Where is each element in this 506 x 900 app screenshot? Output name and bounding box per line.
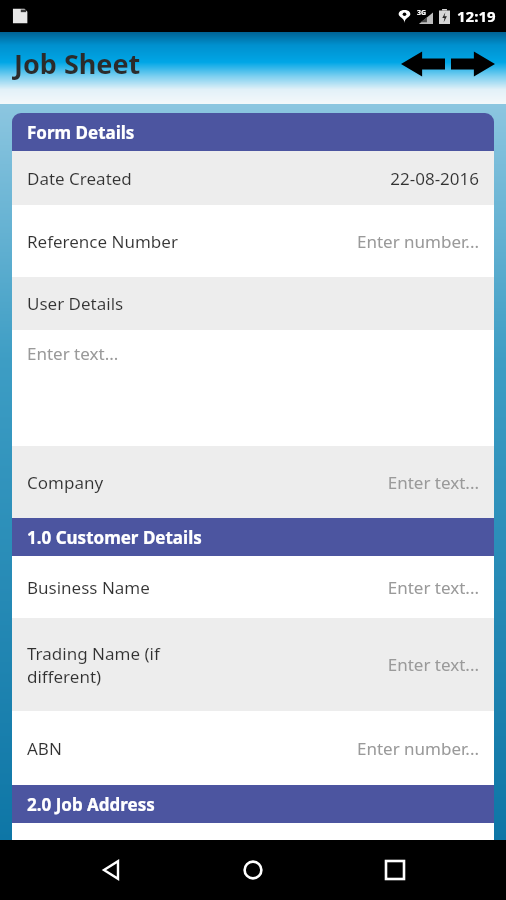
staticText: Date Created xyxy=(27,167,390,190)
button[interactable]: Next xyxy=(448,47,498,81)
staticText: Form Details xyxy=(27,121,135,144)
button[interactable]: Home xyxy=(223,840,283,900)
staticText: User Details xyxy=(27,292,124,315)
button[interactable]: Recent apps xyxy=(365,840,425,900)
staticText: Enter text... xyxy=(387,471,479,494)
staticText: Enter number... xyxy=(356,230,479,253)
staticText: different) xyxy=(27,665,102,688)
button[interactable]: Trading Name (if xyxy=(12,618,494,711)
button[interactable]: 2.0 Job Address xyxy=(12,785,494,823)
staticText: 2.0 Job Address xyxy=(27,793,155,816)
staticText: Trading Name (if xyxy=(27,642,160,665)
staticText: Enter text... xyxy=(27,342,119,365)
staticText: Enter text... xyxy=(387,653,479,676)
staticText: Enter text... xyxy=(387,576,479,599)
button[interactable]: Form Details xyxy=(12,113,494,151)
staticText: Job Sheet xyxy=(14,45,141,82)
staticText: Business Name xyxy=(27,576,387,599)
button[interactable]: User Details xyxy=(12,277,494,330)
button[interactable]: Enter text... xyxy=(12,330,494,446)
staticText: 1.0 Customer Details xyxy=(27,526,202,549)
staticText: Enter number... xyxy=(356,737,479,760)
button[interactable]: Date Created xyxy=(12,151,494,205)
staticText: Company xyxy=(27,471,387,494)
staticText: 12:19 xyxy=(457,6,496,26)
button[interactable]: Back xyxy=(82,840,142,900)
staticText: 3G xyxy=(417,8,427,18)
button[interactable]: Previous xyxy=(398,47,448,81)
button[interactable]: Company xyxy=(12,446,494,518)
button[interactable]: Reference Number xyxy=(12,205,494,277)
button[interactable]: 1.0 Customer Details xyxy=(12,518,494,556)
button[interactable]: Business Name xyxy=(12,556,494,618)
staticText: Reference Number xyxy=(27,230,356,253)
button[interactable]: ABN xyxy=(12,711,494,785)
staticText: ABN xyxy=(27,737,356,760)
staticText: 22-08-2016 xyxy=(390,167,479,190)
